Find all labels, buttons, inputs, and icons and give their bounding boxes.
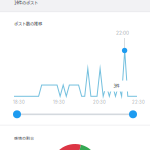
staticText: ポスト数の推移: [14, 20, 42, 27]
staticText: 20:30: [93, 99, 106, 105]
staticText: 3件: [113, 83, 119, 89]
staticText: 22:30: [132, 99, 145, 105]
staticText: 22:00: [116, 30, 129, 36]
staticText: 感情の割合: [14, 135, 34, 141]
staticText: 18:30: [13, 99, 25, 105]
staticText: 14件のポスト: [14, 0, 38, 6]
staticText: 19:30: [53, 99, 65, 105]
